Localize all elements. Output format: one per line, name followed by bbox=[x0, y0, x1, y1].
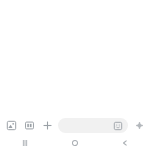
button[interactable]: Stickers bbox=[21, 117, 37, 133]
button[interactable]: More options bbox=[39, 117, 55, 133]
button[interactable]: Send bbox=[131, 117, 147, 133]
button[interactable]: Home bbox=[50, 136, 100, 150]
button[interactable]: Emoji bbox=[58, 118, 128, 133]
button[interactable]: Back bbox=[100, 136, 150, 150]
button[interactable]: Emoji bbox=[112, 120, 124, 132]
button[interactable]: Gallery bbox=[3, 117, 19, 133]
button[interactable]: Recent apps bbox=[0, 136, 50, 150]
